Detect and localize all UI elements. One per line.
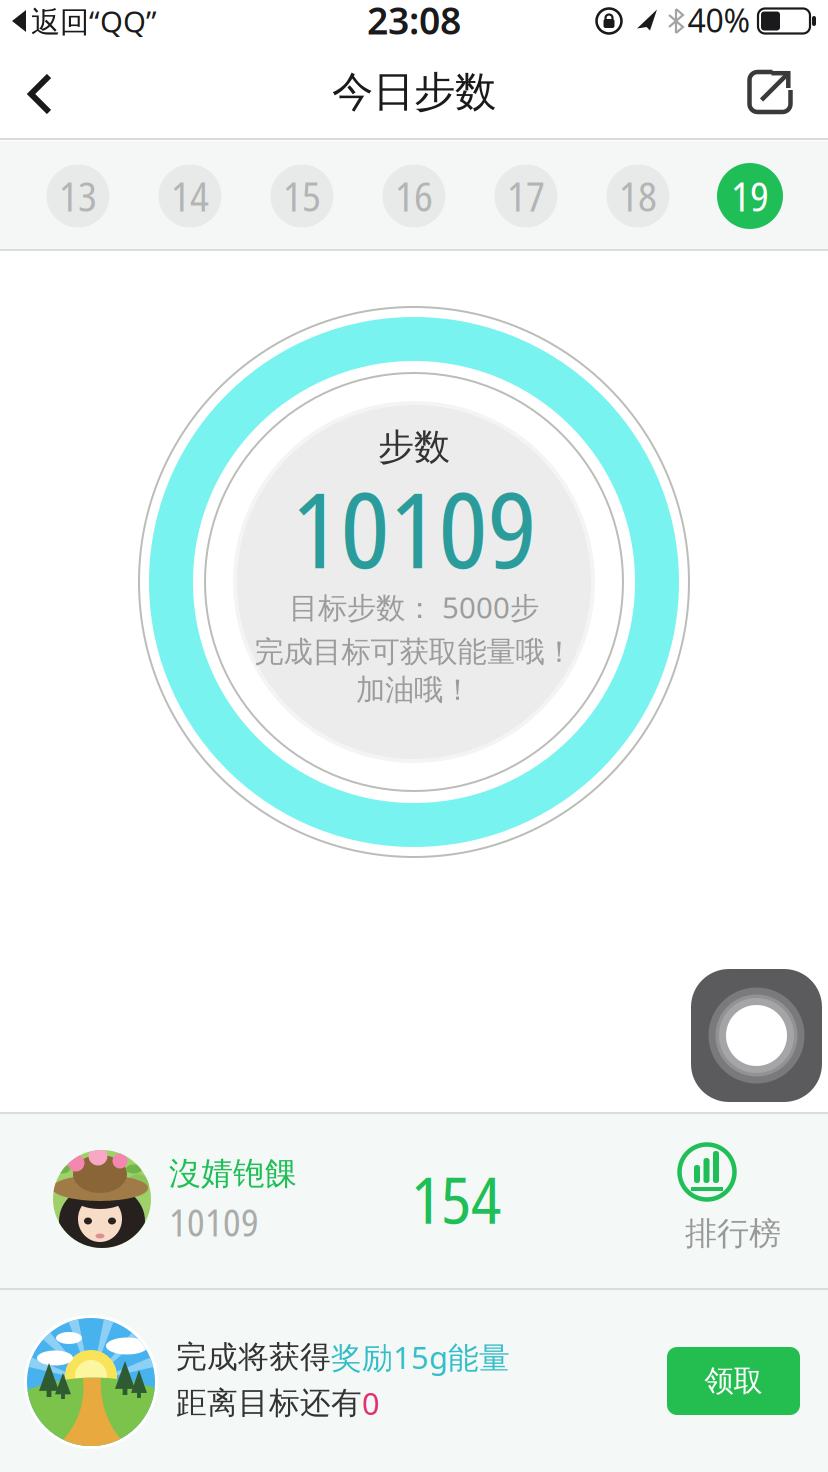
button[interactable]: 19	[717, 163, 783, 229]
button[interactable]: 18	[606, 164, 669, 227]
button[interactable]: 领取	[667, 1347, 800, 1415]
staticText: 23:08	[367, 0, 461, 45]
staticText: 17	[507, 169, 545, 223]
staticText: 15	[283, 169, 321, 223]
staticText: 今日步数	[332, 67, 496, 117]
staticText: 154	[411, 1155, 501, 1243]
staticText: 返回“QQ”	[31, 1, 157, 40]
staticText: 目标步数： 5000步	[289, 587, 539, 626]
button[interactable]: Share	[735, 57, 804, 126]
staticText: 沒婧铇餜	[169, 1154, 297, 1193]
staticText: 完成目标可获取能量哦！	[254, 634, 573, 670]
staticText: 19	[731, 169, 769, 223]
staticText: 13	[59, 169, 97, 223]
staticText: 奖励15g能量	[331, 1337, 510, 1377]
button[interactable]: 15	[270, 164, 333, 227]
staticText: 40%	[687, 0, 750, 41]
staticText: 0	[362, 1383, 380, 1423]
staticText: 14	[171, 169, 209, 223]
staticText: 16	[395, 169, 433, 223]
button[interactable]: 13	[46, 164, 109, 227]
staticText: 加油哦！	[356, 672, 472, 708]
staticText: 距离目标还有	[176, 1384, 362, 1422]
staticText: 领取	[704, 1363, 762, 1399]
button[interactable]: Back	[11, 56, 69, 132]
staticText: 18	[619, 169, 657, 223]
button[interactable]: 16	[382, 164, 445, 227]
button[interactable]: 17	[494, 164, 557, 227]
staticText: 步数	[378, 425, 450, 469]
button[interactable]: 沒婧铇餜	[0, 1114, 828, 1288]
staticText: 排行榜	[685, 1214, 781, 1253]
button[interactable]: 返回“QQ”	[12, 1, 232, 41]
staticText: 10109	[291, 457, 536, 599]
button[interactable]: 14	[158, 164, 221, 227]
staticText: 完成将获得	[176, 1338, 331, 1376]
button[interactable]: AssistiveTouch	[691, 969, 822, 1102]
staticText: 10109	[169, 1197, 259, 1247]
